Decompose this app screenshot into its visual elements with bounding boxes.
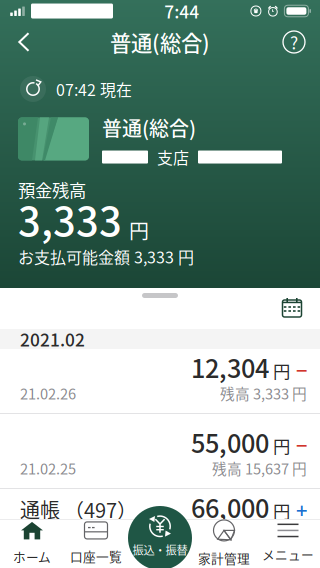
staticText: ? <box>290 29 298 55</box>
button[interactable]: 振込・振替 <box>128 506 192 568</box>
staticText: − <box>296 430 307 459</box>
staticText: 66,000 <box>191 489 269 525</box>
staticText: 円 <box>273 498 290 523</box>
staticText: 円 <box>273 358 290 383</box>
staticText: − <box>296 355 307 384</box>
staticText: + <box>296 495 307 524</box>
staticText: 支店 <box>157 145 189 169</box>
staticText: ホーム <box>13 547 51 566</box>
staticText: 55,000 <box>191 424 269 460</box>
staticText: 21.02.25 <box>20 457 76 479</box>
staticText: 通帳 （497） <box>20 495 137 524</box>
button[interactable]: ホーム <box>0 520 64 567</box>
staticText: 預金残高 <box>18 177 86 202</box>
button[interactable]: 口座一覧 <box>64 520 128 567</box>
button[interactable]: 12,304 <box>0 349 320 413</box>
staticText: 円 <box>273 433 290 458</box>
staticText: 3,333 <box>18 189 122 247</box>
staticText: 残高 15,637 円 <box>212 457 307 479</box>
staticText: 振込・振替 <box>132 541 187 558</box>
button[interactable]: カレンダー <box>282 298 302 317</box>
button[interactable]: 更新 <box>20 76 46 102</box>
staticText: お支払可能金額 3,333 円 <box>18 245 194 268</box>
staticText: 口座一覧 <box>70 547 122 565</box>
staticText: 7:44 <box>164 0 199 24</box>
button[interactable]: ヘルプ <box>272 22 316 62</box>
button[interactable]: 戻る <box>2 22 46 62</box>
staticText: 07:42 現在 <box>56 77 132 101</box>
button[interactable]: 55,000 <box>0 414 320 488</box>
staticText: 12,304 <box>191 349 269 385</box>
staticText: 残高 3,333 円 <box>220 382 307 404</box>
button[interactable]: 家計管理 <box>192 520 256 567</box>
staticText: 普通(総合) <box>110 27 210 57</box>
staticText: 家計管理 <box>198 549 250 567</box>
staticText: 円 <box>129 215 149 244</box>
staticText: 21.02.26 <box>20 382 76 404</box>
staticText: 普通(総合) <box>102 113 196 142</box>
button[interactable]: 通帳 （497） <box>0 489 320 529</box>
staticText: メニュー <box>262 545 314 563</box>
button[interactable]: メニュー <box>256 520 320 567</box>
staticText: 2021.02 <box>20 326 85 352</box>
